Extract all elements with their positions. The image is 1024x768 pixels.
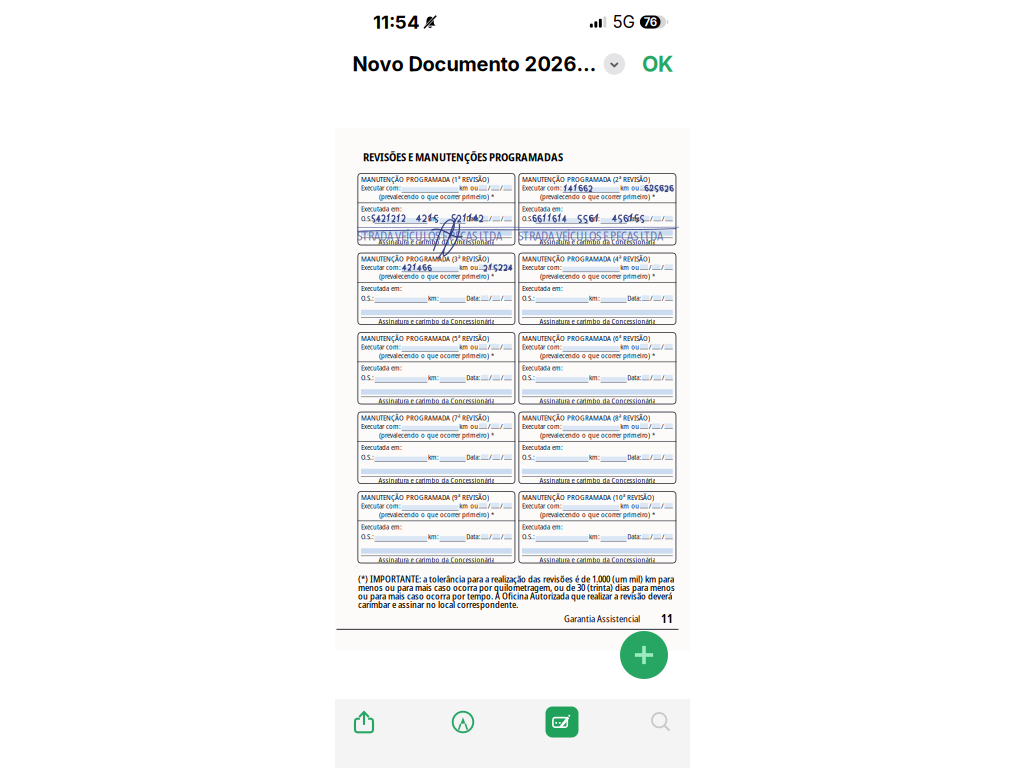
- staticText: MANUTENÇÃO PROGRAMADA (7ª REVISÃO): [361, 412, 489, 423]
- button[interactable]: Search: [638, 699, 684, 745]
- button[interactable]: Text recognition: [539, 699, 585, 745]
- staticText: /: [488, 501, 491, 511]
- staticText: /: [500, 183, 503, 193]
- button[interactable]: Document options: [603, 53, 625, 75]
- staticText: (prevalecendo o que ocorrer primeiro) *: [540, 430, 655, 440]
- staticText: km ou: [620, 183, 639, 193]
- staticText: (prevalecendo o que ocorrer primeiro) *: [379, 350, 494, 360]
- staticText: /: [650, 531, 653, 541]
- staticText: /: [500, 262, 503, 272]
- staticText: MANUTENÇÃO PROGRAMADA (3ª REVISÃO): [361, 253, 489, 264]
- staticText: km:: [589, 452, 600, 462]
- staticText: /: [649, 183, 652, 193]
- staticText: (*) IMPORTANTE: a tolerância para a real…: [358, 572, 675, 611]
- staticText: /: [661, 183, 664, 193]
- button[interactable]: Share: [341, 699, 387, 745]
- staticText: (prevalecendo o que ocorrer primeiro) *: [379, 430, 494, 440]
- staticText: STRADA VEÍCULOS E PEÇAS LTDA: [518, 229, 663, 243]
- staticText: Garantia Assistencial: [564, 612, 640, 625]
- staticText: Data:: [627, 452, 641, 462]
- staticText: Executada em:: [522, 442, 563, 452]
- staticText: /: [488, 421, 491, 431]
- staticText: /: [650, 213, 653, 223]
- staticText: Assinatura e carimbo da Concessionária: [378, 475, 494, 485]
- staticText: Data:: [627, 372, 641, 382]
- button[interactable]: Markup: [440, 699, 486, 745]
- staticText: STRADA VEÍCULOS E PEÇAS LTDA: [357, 229, 502, 243]
- staticText: /: [650, 372, 653, 382]
- staticText: MANUTENÇÃO PROGRAMADA (1ª REVISÃO): [361, 174, 489, 184]
- staticText: (prevalecendo o que ocorrer primeiro) *: [379, 271, 494, 281]
- staticText: Executar com:: [522, 262, 562, 272]
- staticText: km:: [428, 531, 439, 541]
- staticText: /: [662, 452, 665, 462]
- staticText: O.S.:: [522, 293, 535, 303]
- staticText: Novo Documento 2026-02-…: [352, 52, 599, 76]
- staticText: /: [501, 372, 504, 382]
- staticText: O.S.:: [361, 531, 374, 541]
- staticText: /: [501, 213, 504, 223]
- staticText: /: [661, 342, 664, 352]
- staticText: /: [662, 213, 665, 223]
- staticText: Executada em:: [361, 522, 402, 532]
- staticText: /: [662, 293, 665, 303]
- staticText: km:: [428, 213, 439, 223]
- staticText: Executar com:: [522, 501, 562, 511]
- staticText: Executar com:: [361, 342, 401, 352]
- staticText: MANUTENÇÃO PROGRAMADA (2ª REVISÃO): [522, 174, 650, 184]
- staticText: Executada em:: [522, 522, 563, 532]
- staticText: Assinatura e carimbo da Concessionária: [539, 555, 655, 565]
- staticText: Data:: [627, 213, 641, 223]
- staticText: /: [650, 452, 653, 462]
- staticText: /: [501, 293, 504, 303]
- staticText: MANUTENÇÃO PROGRAMADA (10ª REVISÃO): [522, 492, 654, 502]
- staticText: Assinatura e carimbo da Concessionária: [378, 555, 494, 565]
- staticText: km:: [589, 213, 600, 223]
- staticText: O.S.:: [522, 213, 535, 223]
- staticText: km ou: [620, 501, 639, 511]
- staticText: /: [489, 452, 492, 462]
- staticText: /: [649, 342, 652, 352]
- staticText: /: [500, 342, 503, 352]
- staticText: /: [489, 213, 492, 223]
- staticText: Assinatura e carimbo da Concessionária: [378, 237, 494, 247]
- staticText: /: [488, 262, 491, 272]
- staticText: /: [501, 531, 504, 541]
- staticText: Data:: [627, 531, 641, 541]
- staticText: OK: [642, 51, 673, 77]
- staticText: MANUTENÇÃO PROGRAMADA (5ª REVISÃO): [361, 333, 489, 343]
- staticText: Executada em:: [361, 363, 402, 373]
- staticText: (prevalecendo o que ocorrer primeiro) *: [540, 191, 655, 201]
- staticText: MANUTENÇÃO PROGRAMADA (9ª REVISÃO): [361, 492, 489, 502]
- staticText: 76: [644, 15, 657, 29]
- staticText: /: [661, 421, 664, 431]
- staticText: km ou: [459, 501, 478, 511]
- staticText: MANUTENÇÃO PROGRAMADA (8ª REVISÃO): [522, 412, 650, 423]
- staticText: /: [500, 501, 503, 511]
- staticText: REVISÕES E MANUTENÇÕES PROGRAMADAS: [363, 149, 563, 165]
- staticText: km:: [589, 293, 600, 303]
- staticText: MANUTENÇÃO PROGRAMADA (6ª REVISÃO): [522, 333, 650, 343]
- staticText: /: [649, 501, 652, 511]
- button[interactable]: OK: [642, 51, 673, 77]
- staticText: /: [501, 452, 504, 462]
- staticText: /: [649, 421, 652, 431]
- staticText: (prevalecendo o que ocorrer primeiro) *: [379, 191, 494, 201]
- staticText: Executar com:: [361, 501, 401, 511]
- staticText: /: [649, 262, 652, 272]
- staticText: O.S.:: [361, 293, 374, 303]
- staticText: Executar com:: [361, 421, 401, 431]
- staticText: km:: [589, 372, 600, 382]
- staticText: Executar com:: [522, 342, 562, 352]
- staticText: /: [661, 501, 664, 511]
- staticText: Assinatura e carimbo da Concessionária: [539, 316, 655, 326]
- button[interactable]: Add page: [620, 631, 668, 679]
- staticText: Executada em:: [361, 204, 402, 214]
- staticText: Assinatura e carimbo da Concessionária: [539, 396, 655, 406]
- staticText: Data:: [466, 531, 480, 541]
- staticText: km ou: [459, 183, 478, 193]
- staticText: km:: [589, 531, 600, 541]
- staticText: O.S.:: [361, 452, 374, 462]
- staticText: km ou: [620, 421, 639, 431]
- staticText: Assinatura e carimbo da Concessionária: [539, 237, 655, 247]
